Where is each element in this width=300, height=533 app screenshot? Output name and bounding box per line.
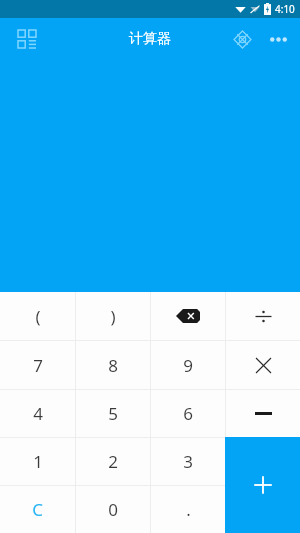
staticText: 3: [183, 450, 193, 473]
staticText: 1: [33, 450, 43, 473]
staticText: 计算器: [129, 30, 171, 48]
button[interactable]: 4: [0, 390, 75, 437]
staticText: ): [110, 305, 116, 328]
button[interactable]: 8: [76, 341, 150, 389]
button[interactable]: Plus: [225, 437, 300, 533]
staticText: C: [32, 498, 43, 521]
button[interactable]: Backspace: [151, 292, 225, 340]
staticText: 4:10: [275, 2, 295, 16]
button[interactable]: (: [0, 292, 75, 340]
button[interactable]: 7: [0, 341, 75, 389]
button[interactable]: Divide: [226, 292, 300, 340]
button[interactable]: Science mode: [224, 21, 260, 57]
button[interactable]: 1: [0, 438, 75, 485]
staticText: 9: [183, 354, 193, 377]
staticText: .: [186, 498, 191, 521]
button[interactable]: More options: [260, 21, 296, 57]
button[interactable]: 6: [151, 390, 225, 437]
button[interactable]: Menu: [10, 22, 44, 56]
button[interactable]: 3: [151, 438, 225, 485]
button[interactable]: 5: [76, 390, 150, 437]
button[interactable]: 9: [151, 341, 225, 389]
button[interactable]: ): [76, 292, 150, 340]
button[interactable]: Multiply: [226, 341, 300, 389]
button[interactable]: C: [0, 486, 75, 533]
staticText: 8: [108, 354, 118, 377]
staticText: 7: [33, 354, 43, 377]
staticText: 6: [183, 402, 193, 425]
staticText: 2: [108, 450, 118, 473]
staticText: 0: [108, 498, 118, 521]
staticText: (: [35, 305, 41, 328]
button[interactable]: Minus: [226, 390, 300, 437]
button[interactable]: 2: [76, 438, 150, 485]
button[interactable]: 0: [76, 486, 150, 533]
staticText: 4: [33, 402, 43, 425]
button[interactable]: .: [151, 486, 225, 533]
staticText: 5: [108, 402, 118, 425]
